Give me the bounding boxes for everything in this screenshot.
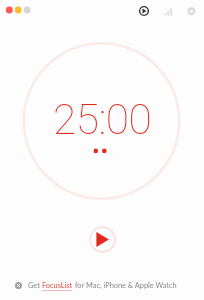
button[interactable]: Start (134, 1, 154, 21)
button[interactable]: Statistics (158, 1, 178, 21)
button[interactable]: Settings (181, 1, 201, 21)
button[interactable]: Play (89, 226, 116, 253)
staticText: FocusList (42, 281, 73, 290)
button[interactable]: Get (0, 274, 204, 300)
staticText: for Mac, iPhone & Apple Watch (73, 281, 177, 290)
staticText: 25:00 (53, 95, 152, 145)
staticText: Get (28, 281, 42, 290)
